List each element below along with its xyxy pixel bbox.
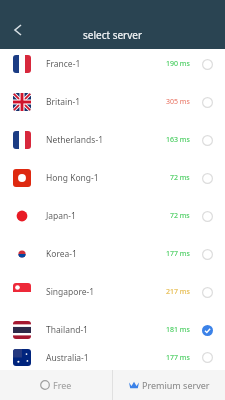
staticText: Australia-1 xyxy=(46,352,166,364)
button[interactable]: Netherlands-1 xyxy=(0,121,225,159)
staticText: Netherlands-1 xyxy=(46,134,166,146)
staticText: France-1 xyxy=(46,58,166,70)
button[interactable]: Thailand-1 xyxy=(0,311,225,349)
staticText: Hong Kong-1 xyxy=(46,172,170,184)
staticText: 190 ms xyxy=(166,59,190,69)
button[interactable]: Back xyxy=(4,11,32,39)
button[interactable]: Hong Kong-1 xyxy=(0,159,225,197)
staticText: 177 ms xyxy=(166,249,190,259)
button[interactable]: Singapore-1 xyxy=(0,273,225,311)
staticText: Britain-1 xyxy=(46,96,166,108)
button[interactable]: France-1 xyxy=(0,49,225,83)
staticText: Japan-1 xyxy=(46,210,170,222)
button[interactable]: Free xyxy=(0,370,112,400)
staticText: 163 ms xyxy=(166,135,190,145)
button[interactable]: Australia-1 xyxy=(0,349,225,366)
staticText: Free xyxy=(53,379,72,391)
staticText: Premium server xyxy=(142,379,210,391)
button[interactable]: Britain-1 xyxy=(0,83,225,121)
staticText: 181 ms xyxy=(166,325,190,335)
staticText: Singapore-1 xyxy=(46,286,166,298)
staticText: Thailand-1 xyxy=(46,324,166,336)
staticText: select server xyxy=(83,28,143,42)
staticText: 217 ms xyxy=(166,287,190,297)
staticText: 72 ms xyxy=(170,211,190,221)
staticText: 72 ms xyxy=(170,173,190,183)
staticText: 177 ms xyxy=(166,353,190,363)
staticText: 305 ms xyxy=(166,97,190,107)
button[interactable]: Premium server xyxy=(113,370,225,400)
button[interactable]: Japan-1 xyxy=(0,197,225,235)
button[interactable]: Korea-1 xyxy=(0,235,225,273)
staticText: Korea-1 xyxy=(46,248,166,260)
